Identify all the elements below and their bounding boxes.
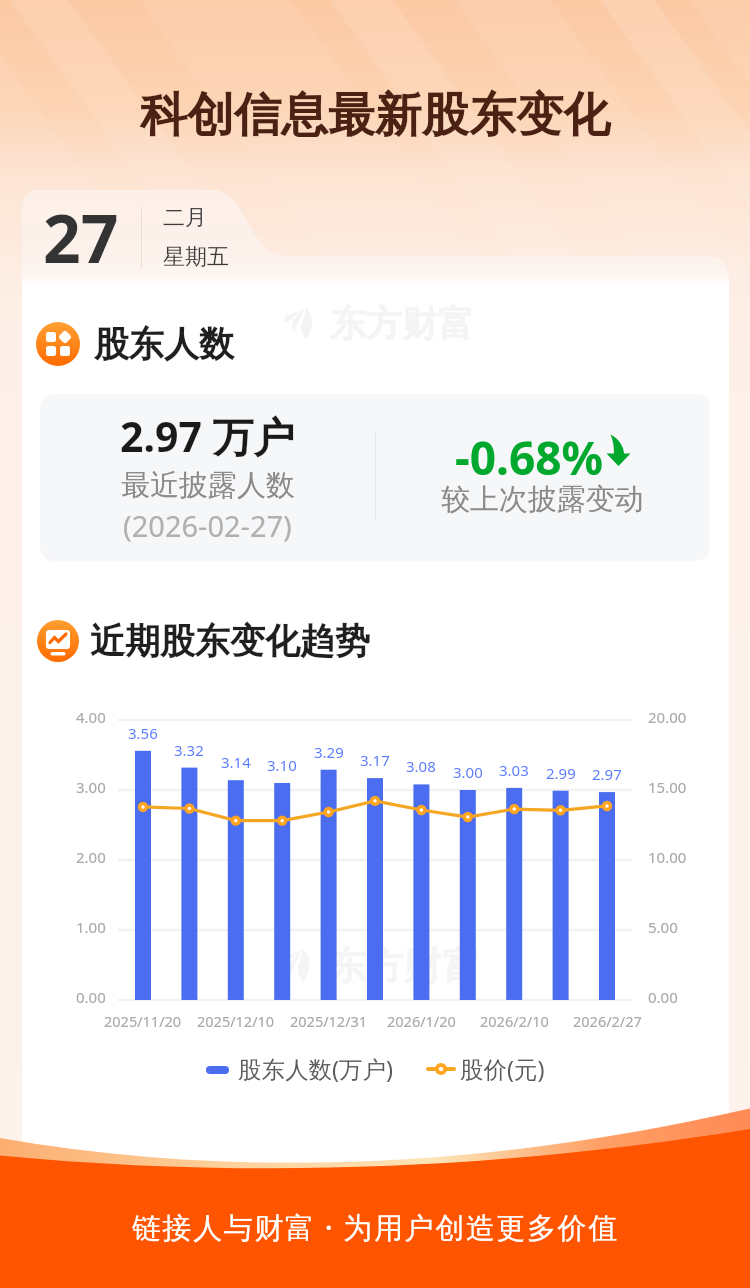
staticText: 2.99	[546, 763, 576, 783]
staticText: 2.97 万户	[120, 408, 295, 458]
staticText: 3.56	[128, 723, 158, 743]
staticText: -0.68%	[455, 426, 604, 478]
staticText: 3.17	[360, 750, 390, 770]
button[interactable]: 股东人数	[36, 322, 234, 366]
staticText: 链接人与财富 · 为用户创造更多价值	[132, 1207, 619, 1247]
staticText: 二月	[163, 204, 207, 232]
staticText: 15.00	[648, 777, 687, 797]
button[interactable]: 近期股东变化趋势	[37, 619, 370, 663]
staticText: 星期五	[163, 243, 229, 271]
staticText: 2.97	[592, 764, 622, 784]
staticText: 2025/11/20	[104, 1011, 182, 1031]
staticText: 3.29	[314, 742, 344, 762]
staticText: 2026/2/10	[480, 1011, 549, 1031]
staticText: 2025/12/31	[290, 1011, 368, 1031]
staticText: 3.03	[499, 760, 529, 780]
other: 近期股东变化趋势	[37, 620, 79, 662]
staticText: 5.00	[648, 917, 678, 937]
staticText: 4.00	[76, 707, 106, 727]
staticText: 股东人数(万户)	[238, 1053, 394, 1085]
staticText: 较上次披露变动	[441, 481, 644, 518]
staticText: 20.00	[648, 707, 687, 727]
staticText: 近期股东变化趋势	[90, 619, 370, 663]
staticText: 东方财富	[328, 942, 480, 990]
staticText: 0.00	[648, 987, 678, 1007]
staticText: 2.00	[76, 847, 106, 867]
staticText: 3.00	[76, 777, 106, 797]
staticText: 2026/1/20	[387, 1011, 456, 1031]
other: 股东人数	[36, 322, 80, 366]
staticText: 科创信息最新股东变化	[140, 86, 610, 145]
staticText: 股价(元)	[460, 1053, 545, 1085]
staticText: 2025/12/10	[197, 1011, 275, 1031]
staticText: 最近披露人数	[121, 467, 295, 504]
staticText: (2026-02-27)	[123, 506, 292, 545]
staticText: 3.00	[453, 762, 483, 782]
staticText: 27	[43, 192, 119, 282]
staticText: 股东人数	[94, 322, 234, 366]
staticText: 3.32	[174, 740, 204, 760]
staticText: 2026/2/27	[573, 1011, 642, 1031]
staticText: 东方财富	[330, 301, 474, 346]
staticText: 0.00	[76, 987, 106, 1007]
staticText: 10.00	[648, 847, 687, 867]
staticText: 1.00	[76, 917, 106, 937]
staticText: 3.14	[221, 752, 251, 772]
staticText: 3.08	[406, 756, 436, 776]
staticText: 3.10	[267, 755, 297, 775]
